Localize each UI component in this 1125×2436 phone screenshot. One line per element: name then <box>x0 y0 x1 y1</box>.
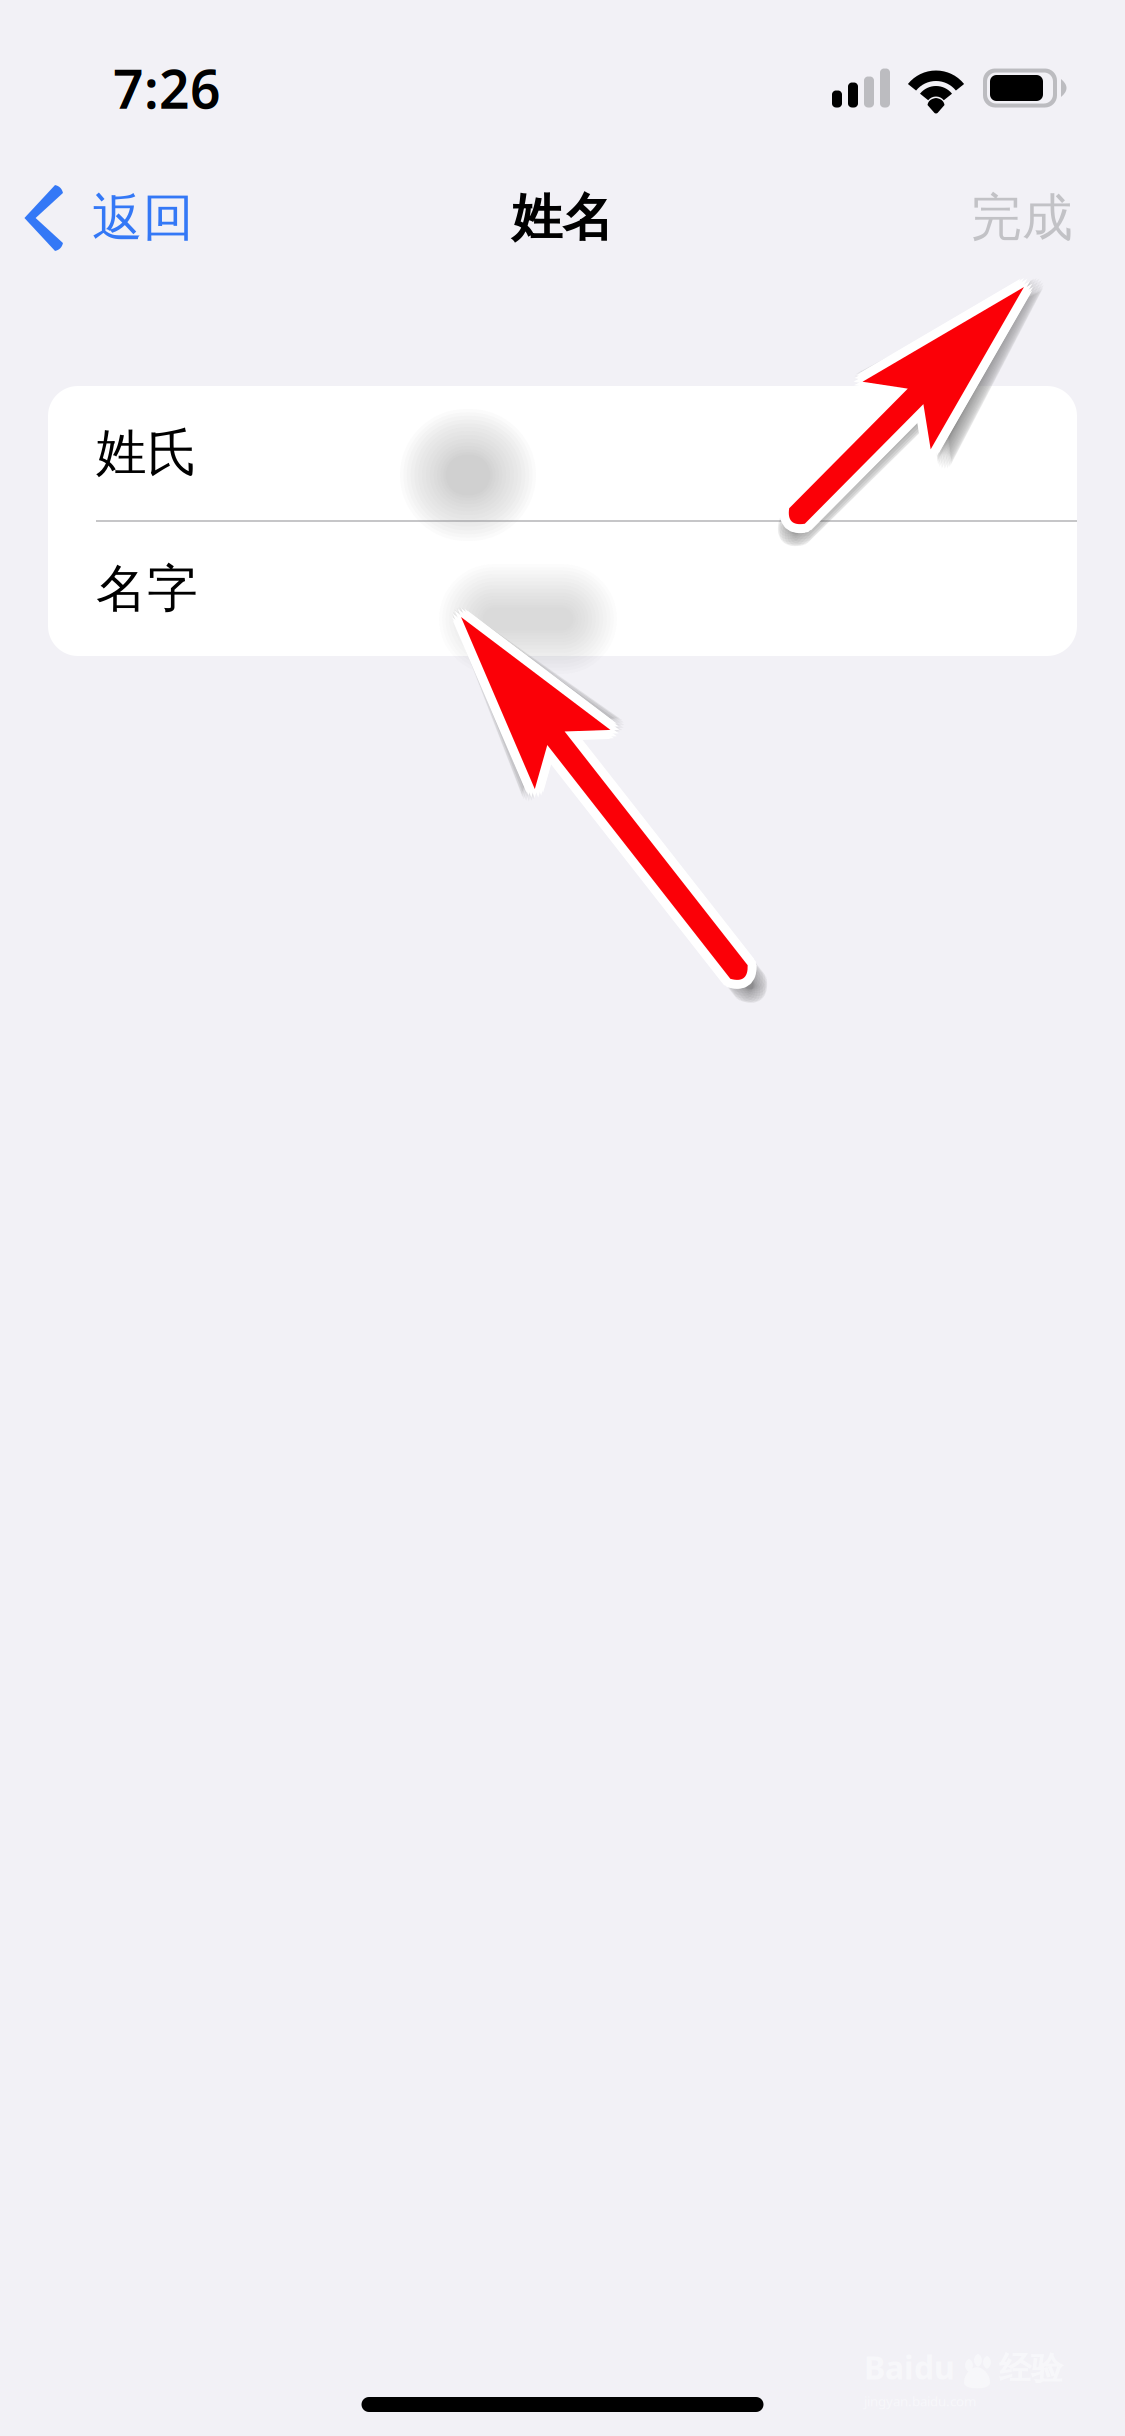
staticText: 7:26 <box>113 53 221 123</box>
button[interactable]: 姓氏 <box>48 386 1077 520</box>
staticText: 姓氏 <box>96 422 198 484</box>
button[interactable]: 完成 <box>947 152 1125 284</box>
button[interactable]: 名字 <box>48 522 1077 656</box>
staticText: 完成 <box>971 187 1073 249</box>
staticText: 姓名 <box>511 187 613 249</box>
staticText: 名字 <box>96 558 198 620</box>
button[interactable]: 返回 <box>0 152 218 284</box>
staticText: 返回 <box>92 187 194 249</box>
